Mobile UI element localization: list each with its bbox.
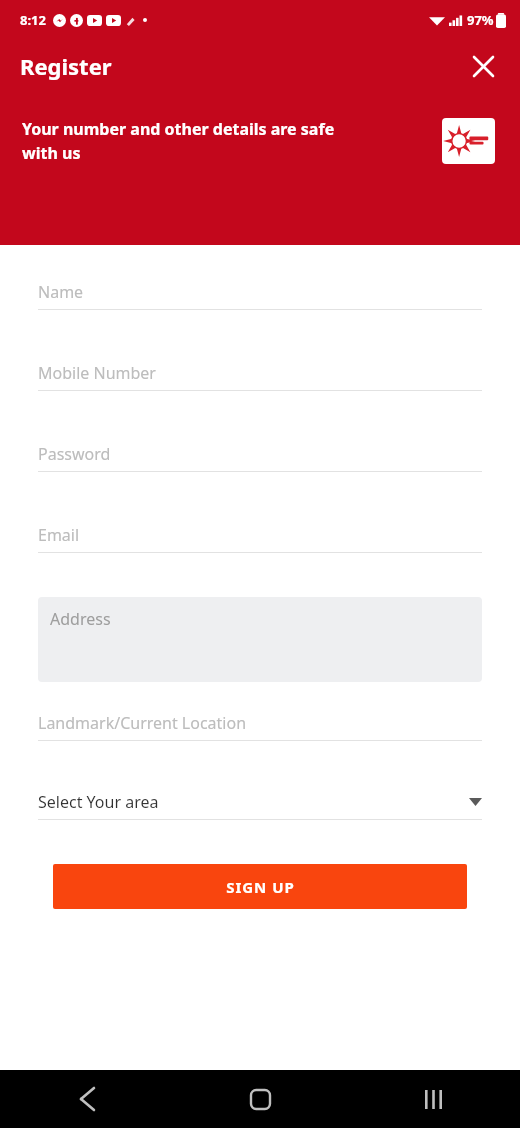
button[interactable]: Recent apps — [347, 1070, 520, 1128]
button[interactable]: Name — [38, 278, 482, 310]
button[interactable]: Home — [174, 1070, 347, 1128]
button[interactable]: Email — [38, 521, 482, 553]
staticText: Register — [20, 51, 112, 81]
staticText: Your number and other details are safe w… — [22, 118, 428, 164]
staticText: 8:12 — [20, 11, 46, 29]
button[interactable]: SIGN UP — [53, 864, 467, 909]
staticText: Landmark/Current Location — [38, 712, 247, 734]
button[interactable]: Close — [466, 49, 500, 83]
staticText: SIGN UP — [226, 877, 295, 897]
button[interactable]: Landmark/Current Location — [38, 709, 482, 741]
staticText: 97% — [467, 11, 494, 29]
staticText: Email — [38, 524, 80, 546]
staticText: Mobile Number — [38, 362, 156, 384]
button[interactable]: Mobile Number — [38, 359, 482, 391]
staticText: Password — [38, 443, 111, 465]
button[interactable]: Password — [38, 440, 482, 472]
staticText: Name — [38, 281, 84, 303]
other: Brand logo — [442, 118, 495, 164]
button[interactable]: Address — [38, 597, 482, 682]
button[interactable]: Back — [0, 1070, 174, 1128]
button[interactable]: Select Your area — [38, 789, 482, 820]
staticText: Address — [50, 608, 111, 630]
staticText: Select Your area — [38, 791, 469, 813]
